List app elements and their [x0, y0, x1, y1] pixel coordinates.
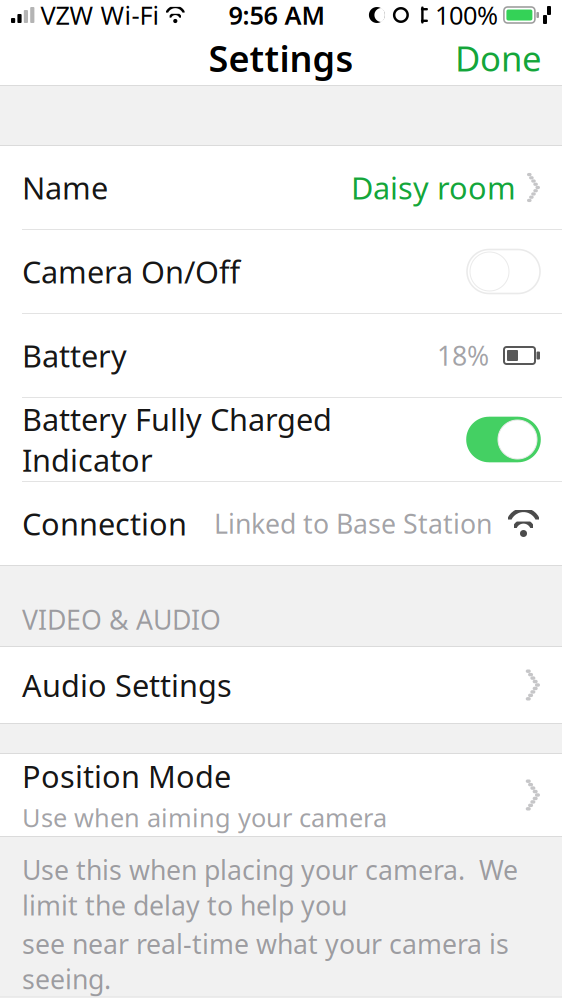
button[interactable]: Battery Fully Charged Indicator — [0, 398, 562, 481]
staticText: Done — [455, 35, 542, 81]
staticText: Battery — [22, 335, 127, 376]
button[interactable]: Audio Settings — [0, 647, 562, 723]
button[interactable]: Camera On/Off — [0, 230, 562, 313]
staticText: Position Mode — [22, 756, 231, 796]
staticText: Use when aiming your camera — [22, 800, 387, 834]
staticText: Settings — [208, 34, 353, 82]
staticText: VZW Wi-Fi — [40, 0, 159, 32]
staticText: Linked to Base Station — [214, 506, 492, 541]
staticText: Camera On/Off — [22, 251, 240, 292]
button[interactable]: Done — [435, 23, 562, 93]
staticText: Audio Settings — [22, 665, 232, 705]
staticText: VIDEO & AUDIO — [22, 602, 221, 637]
staticText: Connection — [22, 503, 187, 544]
staticText: Battery Fully Charged Indicator — [22, 399, 332, 480]
button[interactable]: Connection — [0, 482, 562, 565]
staticText: 100% — [435, 0, 498, 32]
staticText: Use this when placing your camera. We li… — [22, 852, 518, 923]
staticText: Daisy room — [351, 167, 516, 208]
button[interactable]: Battery — [0, 314, 562, 397]
staticText: 18% — [437, 338, 489, 373]
button[interactable]: Name — [0, 146, 562, 229]
staticText: Name — [22, 167, 108, 208]
button[interactable]: Position Mode — [0, 754, 562, 836]
staticText: 9:56 AM — [229, 0, 326, 32]
staticText: see near real-time what your camera is s… — [22, 926, 509, 997]
